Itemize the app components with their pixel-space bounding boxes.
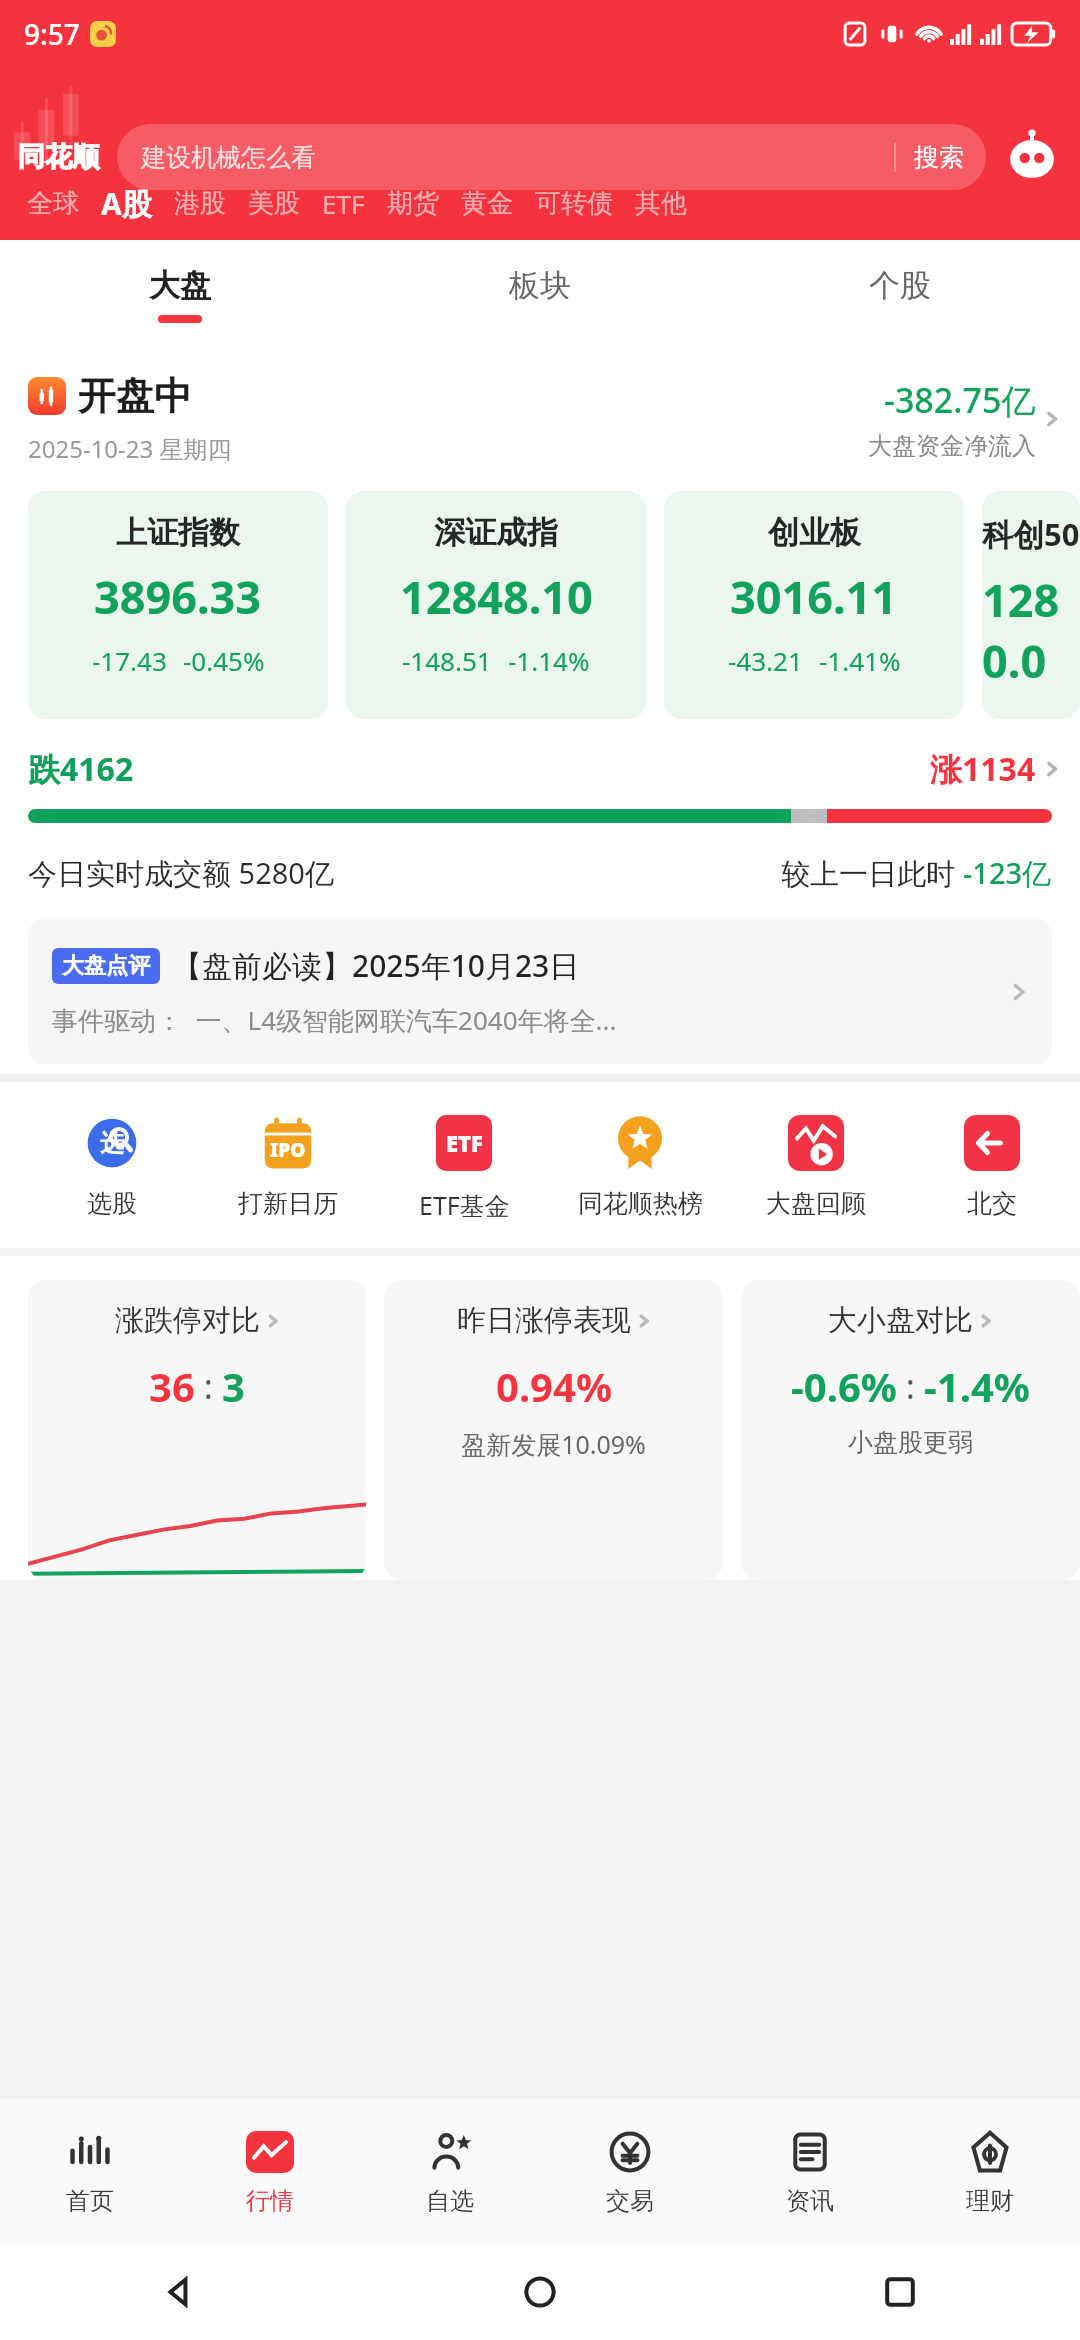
button[interactable]: 创业板 bbox=[664, 491, 964, 719]
staticText: -1.14% bbox=[508, 643, 590, 678]
staticText: 3896.33 bbox=[94, 566, 262, 627]
staticText: 港股 bbox=[174, 187, 226, 220]
staticText: 同花顺热榜 bbox=[578, 1188, 703, 1219]
staticText: 选股 bbox=[87, 1188, 137, 1219]
button[interactable]: Home bbox=[360, 2244, 720, 2340]
staticText: 大盘资金净流入 bbox=[868, 431, 1036, 461]
staticText: -382.75亿 bbox=[884, 377, 1036, 423]
staticText: 北交 bbox=[967, 1188, 1017, 1219]
staticText: -43.21 bbox=[728, 643, 803, 678]
button[interactable]: IPO bbox=[200, 1112, 376, 1219]
staticText: 3 bbox=[222, 1359, 245, 1413]
button[interactable]: 智能助手 bbox=[1002, 127, 1062, 187]
staticText: : bbox=[897, 1363, 924, 1409]
button[interactable]: ETF bbox=[311, 182, 376, 225]
staticText: 事件驱动： 一、L4级智能网联汽车2040年将全... bbox=[52, 1002, 617, 1038]
staticText: 其他 bbox=[635, 187, 687, 220]
button[interactable]: 理财 bbox=[900, 2098, 1080, 2244]
staticText: 可转债 bbox=[535, 187, 613, 220]
staticText: 盈新发展10.09% bbox=[461, 1427, 646, 1461]
staticText: -148.51 bbox=[402, 643, 492, 678]
button[interactable]: 黄金 bbox=[450, 183, 524, 224]
button[interactable]: 上证指数 bbox=[28, 491, 328, 719]
button[interactable]: 科创50 bbox=[982, 491, 1080, 719]
staticText: 深证成指 bbox=[434, 513, 558, 552]
staticText: 【盘前必读】2025年10月23日 bbox=[172, 945, 580, 986]
button[interactable]: 涨跌停对比 bbox=[28, 1280, 366, 1580]
button[interactable]: 大盘回顾 bbox=[728, 1112, 904, 1219]
button[interactable]: Recents bbox=[720, 2244, 1080, 2340]
button[interactable]: 行情 bbox=[180, 2098, 360, 2244]
button[interactable]: 选 bbox=[24, 1112, 200, 1219]
staticText: 板块 bbox=[509, 266, 571, 305]
button[interactable]: 大小盘对比 bbox=[741, 1280, 1080, 1580]
staticText: 9:57 bbox=[24, 15, 80, 53]
button[interactable]: 昨日涨停表现 bbox=[384, 1280, 723, 1580]
button[interactable]: 资讯 bbox=[720, 2098, 900, 2244]
button[interactable]: 板块 bbox=[360, 240, 720, 348]
button[interactable]: 首页 bbox=[0, 2098, 180, 2244]
staticText: 搜索 bbox=[914, 142, 964, 173]
staticText: : bbox=[195, 1363, 222, 1409]
button[interactable]: 建设机械怎么看 bbox=[117, 124, 986, 190]
staticText: 大盘 bbox=[149, 266, 211, 305]
staticText: -1.4% bbox=[924, 1359, 1030, 1413]
staticText: -1.41% bbox=[819, 643, 901, 678]
staticText: 昨日涨停表现 bbox=[457, 1302, 631, 1339]
button[interactable]: 可转债 bbox=[524, 183, 624, 224]
button[interactable]: 全球 bbox=[16, 183, 90, 224]
staticText: 同花顺 bbox=[18, 140, 99, 174]
staticText: ETF基金 bbox=[419, 1188, 510, 1222]
button[interactable]: 个股 bbox=[720, 240, 1080, 348]
staticText: 创业板 bbox=[768, 513, 861, 552]
staticText: -0.45% bbox=[183, 643, 265, 678]
staticText: 大盘回顾 bbox=[766, 1188, 866, 1219]
button[interactable]: 期货 bbox=[376, 183, 450, 224]
button[interactable]: 港股 bbox=[163, 183, 237, 224]
staticText: 涨跌停对比 bbox=[115, 1302, 260, 1339]
staticText: 跌4162 bbox=[28, 747, 134, 791]
staticText: 期货 bbox=[387, 187, 439, 220]
staticText: 理财 bbox=[966, 2186, 1014, 2216]
staticText: 建设机械怎么看 bbox=[141, 142, 316, 173]
staticText: 资讯 bbox=[786, 2186, 834, 2216]
staticText: 12848.10 bbox=[400, 566, 593, 627]
staticText: 涨1134 bbox=[930, 747, 1036, 791]
staticText: -123亿 bbox=[963, 853, 1052, 893]
button[interactable]: 同花顺热榜 bbox=[552, 1112, 728, 1219]
staticText: ETF bbox=[446, 1128, 483, 1158]
button[interactable]: ETF bbox=[376, 1112, 552, 1222]
staticText: ETF bbox=[322, 186, 365, 221]
staticText: 科创50 bbox=[982, 513, 1080, 555]
button[interactable]: 美股 bbox=[237, 183, 311, 224]
staticText: -17.43 bbox=[92, 643, 167, 678]
button[interactable]: 交易 bbox=[540, 2098, 720, 2244]
staticText: 2025-10-23 星期四 bbox=[28, 432, 232, 465]
button[interactable]: -382.75亿 bbox=[868, 377, 1060, 461]
staticText: 36 bbox=[149, 1359, 195, 1413]
staticText: 3016.11 bbox=[730, 566, 898, 627]
staticText: 上证指数 bbox=[116, 513, 240, 552]
staticText: 0.94% bbox=[496, 1359, 612, 1413]
staticText: 行情 bbox=[246, 2186, 294, 2216]
button[interactable]: 北交 bbox=[904, 1112, 1080, 1219]
staticText: 黄金 bbox=[461, 187, 513, 220]
staticText: 美股 bbox=[248, 187, 300, 220]
staticText: 大小盘对比 bbox=[828, 1302, 973, 1339]
staticText: 小盘股更弱 bbox=[848, 1427, 973, 1458]
staticText: 1280.0 bbox=[982, 569, 1080, 691]
button[interactable]: 大盘 bbox=[0, 240, 360, 348]
staticText: 打新日历 bbox=[238, 1188, 338, 1219]
button[interactable]: Back bbox=[0, 2244, 360, 2340]
button[interactable]: 跌4162 bbox=[28, 747, 1060, 791]
staticText: A股 bbox=[101, 183, 152, 224]
button[interactable]: 自选 bbox=[360, 2098, 540, 2244]
staticText: 较上一日此时 bbox=[781, 853, 963, 893]
button[interactable]: 其他 bbox=[624, 183, 698, 224]
staticText: IPO bbox=[270, 1137, 306, 1163]
button[interactable]: A股 bbox=[90, 179, 163, 228]
staticText: 选 bbox=[100, 1128, 124, 1158]
button[interactable]: 大盘点评 bbox=[28, 919, 1052, 1064]
staticText: 自选 bbox=[426, 2186, 474, 2216]
button[interactable]: 深证成指 bbox=[346, 491, 646, 719]
